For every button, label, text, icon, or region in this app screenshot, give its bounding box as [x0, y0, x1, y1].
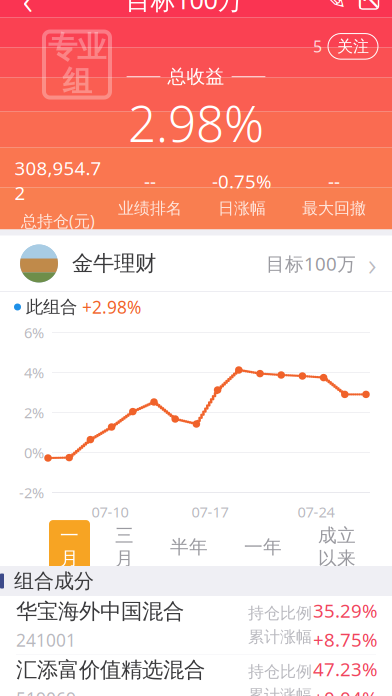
staticText: +2.98%	[82, 295, 141, 318]
staticText: 4%	[24, 363, 44, 382]
staticText: 2.98%	[128, 90, 264, 156]
staticText: 35.29%	[313, 598, 378, 623]
staticText: 专业	[48, 29, 106, 65]
button[interactable]: 金牛理财	[0, 235, 392, 291]
staticText: 累计涨幅	[248, 685, 312, 696]
staticText: 组合成分	[14, 569, 94, 593]
staticText: 6%	[24, 323, 44, 342]
staticText: 总持仓(元)	[21, 210, 95, 231]
staticText: 此组合	[26, 296, 77, 318]
staticText: ✎	[323, 0, 346, 15]
button[interactable]: 汇添富价值精选混合	[0, 654, 392, 696]
staticText: -2%	[19, 483, 44, 502]
staticText: ‹	[22, 0, 33, 26]
staticText: 519069	[16, 687, 76, 696]
staticText: 华宝海外中国混合	[16, 598, 184, 625]
staticText: 一年	[244, 535, 282, 558]
staticText: 日涨幅	[218, 199, 266, 218]
staticText: ⇱	[358, 0, 380, 15]
button[interactable]: Back	[6, 0, 50, 19]
staticText: 关注	[337, 36, 369, 56]
button[interactable]: 半年	[152, 531, 226, 562]
staticText: 07-10	[91, 502, 128, 521]
button[interactable]: 华宝海外中国混合	[0, 596, 392, 654]
button[interactable]: 三月	[97, 520, 152, 574]
staticText: 组	[62, 63, 91, 99]
staticText: 241001	[16, 629, 76, 652]
button[interactable]: 成立以来	[300, 520, 374, 574]
staticText: 持仓比例	[248, 662, 312, 681]
staticText: +8.75%	[313, 627, 378, 652]
staticText: 持仓比例	[248, 603, 312, 623]
staticText: 三月	[115, 524, 134, 570]
staticText: 0%	[24, 443, 44, 462]
staticText: ›	[368, 242, 376, 285]
staticText: 最大回撤	[302, 199, 366, 218]
staticText: 5	[313, 36, 322, 57]
staticText: 半年	[170, 535, 208, 558]
staticText: +0.04%	[313, 685, 378, 696]
staticText: 308,954.72	[14, 156, 101, 205]
staticText: -0.75%	[212, 169, 272, 194]
staticText: 总收益	[167, 65, 224, 88]
staticText: 一月	[60, 524, 79, 570]
staticText: 汇添富价值精选混合	[16, 657, 205, 683]
button[interactable]: Edit	[318, 0, 352, 19]
staticText: 成立以来	[318, 524, 356, 570]
staticText: 金牛理财	[72, 250, 156, 277]
staticText: --	[144, 169, 156, 194]
button[interactable]: 关注	[328, 33, 378, 59]
staticText: 47.23%	[313, 657, 378, 681]
staticText: 业绩排名	[118, 199, 182, 218]
button[interactable]: Share	[352, 0, 386, 19]
staticText: 累计涨幅	[248, 627, 312, 647]
staticText: 07-24	[297, 502, 334, 521]
staticText: 目标100万	[266, 251, 356, 276]
button[interactable]: 一年	[226, 531, 300, 562]
staticText: --	[328, 169, 340, 194]
staticText: 07-17	[191, 502, 228, 521]
button[interactable]: 一月	[42, 520, 97, 574]
staticText: 目标100万	[125, 0, 242, 16]
staticText: 2%	[24, 403, 44, 422]
